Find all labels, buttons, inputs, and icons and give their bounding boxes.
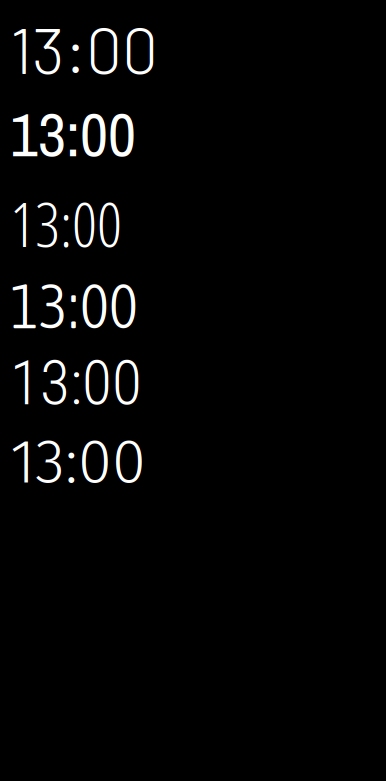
staticText: 13:00: [10, 10, 158, 87]
staticText: 13:00: [10, 271, 138, 341]
staticText: 13:00: [10, 181, 122, 265]
staticText: 13:00: [10, 347, 142, 419]
staticText: 13:00: [10, 425, 146, 499]
staticText: 13:00: [10, 93, 136, 175]
